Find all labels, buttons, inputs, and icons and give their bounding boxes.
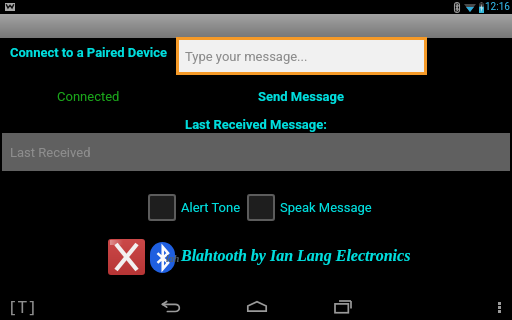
button[interactable]: Home (229, 291, 285, 320)
staticText: Last Received (10, 145, 91, 160)
staticText: lah (166, 253, 180, 264)
button[interactable]: Recent apps (315, 291, 371, 320)
button[interactable]: Switch input method (0, 290, 45, 320)
button[interactable]: Connect to a Paired Device (10, 45, 167, 60)
button[interactable]: More options (486, 291, 512, 320)
staticText: Last Received Message: (0, 117, 512, 132)
button[interactable]: Back (143, 291, 199, 320)
staticText: Type your message... (185, 49, 308, 64)
button[interactable]: Blahtooth by Ian Lang Electronics (181, 247, 411, 265)
button[interactable]: Type your message... (179, 40, 424, 72)
staticText: Alert Tone (181, 200, 241, 215)
button[interactable]: Speak Message (247, 194, 372, 221)
button[interactable]: Send Message (258, 89, 345, 104)
staticText: Connected (57, 89, 120, 104)
button[interactable]: Disconnect (108, 239, 145, 275)
staticText: 12:16 (485, 1, 510, 13)
button[interactable]: Bluetooth (150, 242, 175, 273)
staticText: Speak Message (280, 200, 372, 215)
staticText: [T] (7, 295, 38, 318)
button[interactable]: Alert Tone (148, 194, 241, 221)
